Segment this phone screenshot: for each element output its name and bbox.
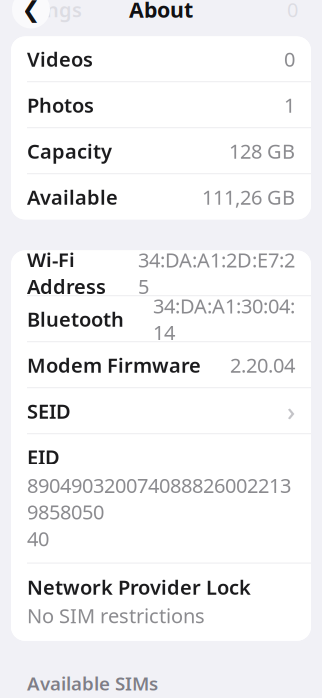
staticText: › (287, 394, 295, 428)
staticText: ❮ (21, 0, 40, 22)
staticText: About (129, 0, 193, 24)
button[interactable]: Photos (11, 82, 311, 127)
staticText: Available (27, 184, 118, 210)
button[interactable]: SEID (11, 388, 311, 433)
button[interactable]: Wi-Fi Address (11, 250, 311, 295)
staticText: 111,26 GB (202, 184, 295, 210)
staticText: 1 (284, 92, 295, 118)
staticText: 8904903200740888260022139858050 40 (27, 472, 291, 552)
staticText: 34:DA:A1:30:04:14 (153, 292, 295, 345)
staticText: 128 GB (229, 138, 295, 164)
staticText: EID (27, 443, 60, 470)
staticText: Photos (27, 92, 94, 118)
staticText: No SIM restrictions (27, 602, 205, 629)
staticText: 2.20.04 (230, 352, 295, 378)
staticText: SEID (27, 398, 71, 424)
staticText: Available SIMs (27, 671, 158, 696)
staticText: 34:DA:A1:2D:E7:25 (138, 246, 295, 299)
button[interactable]: Available (11, 174, 311, 219)
staticText: 0 (287, 0, 298, 23)
staticText: Videos (27, 46, 93, 72)
staticText: Wi-Fi Address (27, 246, 106, 299)
staticText: Capacity (27, 138, 112, 164)
button[interactable]: Modem Firmware (11, 342, 311, 387)
button[interactable]: Back (12, 0, 50, 28)
staticText: ngs (46, 0, 82, 23)
button[interactable]: Bluetooth (11, 296, 311, 341)
staticText: Network Provider Lock (27, 574, 251, 600)
button[interactable]: Videos (11, 36, 311, 81)
button[interactable]: EID (11, 434, 311, 563)
staticText: 0 (284, 46, 295, 72)
staticText: Bluetooth (27, 306, 124, 332)
staticText: Modem Firmware (27, 352, 201, 378)
button[interactable]: Network Provider Lock (11, 564, 311, 641)
button[interactable]: Capacity (11, 128, 311, 173)
